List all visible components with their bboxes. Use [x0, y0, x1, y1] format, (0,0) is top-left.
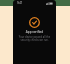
staticText: 9:41	[17, 1, 23, 5]
other: Verified	[29, 17, 40, 28]
staticText: Your device passed all the security chec…	[18, 35, 51, 41]
staticText: App verified	[13, 30, 56, 34]
